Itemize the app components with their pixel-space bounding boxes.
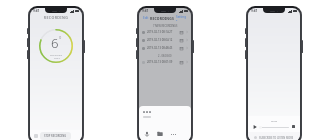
staticText: Edit	[143, 16, 149, 20]
button[interactable]: Stop	[291, 124, 296, 129]
staticText: 0	[59, 35, 62, 40]
staticText: 6	[51, 34, 59, 52]
button[interactable]: Play	[252, 124, 257, 129]
button[interactable]: Edit	[142, 15, 150, 21]
staticText: 2019-02-13 08:01:09	[147, 60, 173, 64]
staticText: 2 - 08:03:00	[158, 54, 172, 57]
button[interactable]: STOP RECORDING	[40, 132, 71, 140]
button[interactable]: More	[169, 130, 177, 138]
staticText: RECORDING	[30, 15, 82, 20]
button[interactable]: 2019-02-13 08:14:27	[139, 28, 191, 36]
button[interactable]: Folder	[156, 130, 164, 138]
staticText: LEFT	[54, 56, 60, 59]
button[interactable]: 2019-02-13 08:48:43	[139, 44, 191, 52]
staticText: Settings	[176, 15, 187, 21]
button[interactable]: 2019-02-13 08:01:09	[139, 58, 191, 66]
button[interactable]: 2019-02-13 08:04:12	[139, 36, 191, 44]
staticText: 2019-02-13 08:14:27	[147, 30, 173, 34]
button[interactable]: Settings	[175, 14, 188, 22]
staticText: 2019-02-13 08:04:12	[147, 38, 173, 42]
staticText: 2019-02-13 08:48:43	[147, 46, 173, 50]
button[interactable]	[259, 125, 289, 129]
button[interactable]: List	[34, 134, 38, 138]
staticText: SUBSCRIBE TO LISTEN MORE	[259, 136, 294, 139]
staticText: 9:41	[33, 9, 40, 13]
staticText: 9:41	[142, 9, 149, 13]
staticText: 00:00	[271, 119, 278, 122]
staticText: 9:41	[251, 9, 258, 13]
button[interactable]: Record	[143, 130, 151, 138]
staticText: 7 NEW RECORDINGS	[153, 24, 178, 27]
staticText: STOP RECORDING	[44, 134, 67, 138]
staticText: RECORDINGS	[150, 16, 175, 21]
button[interactable]: SUBSCRIBE TO LISTEN MORE	[248, 132, 300, 140]
staticText: SECONDS	[50, 53, 63, 56]
